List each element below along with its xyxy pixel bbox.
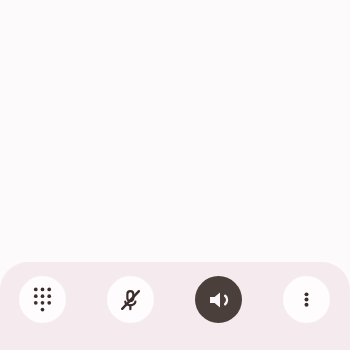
button[interactable]: More options bbox=[283, 276, 330, 323]
button[interactable]: Dialpad bbox=[19, 276, 66, 323]
button[interactable]: Speaker bbox=[195, 276, 242, 323]
button[interactable]: Mute microphone bbox=[107, 276, 154, 323]
